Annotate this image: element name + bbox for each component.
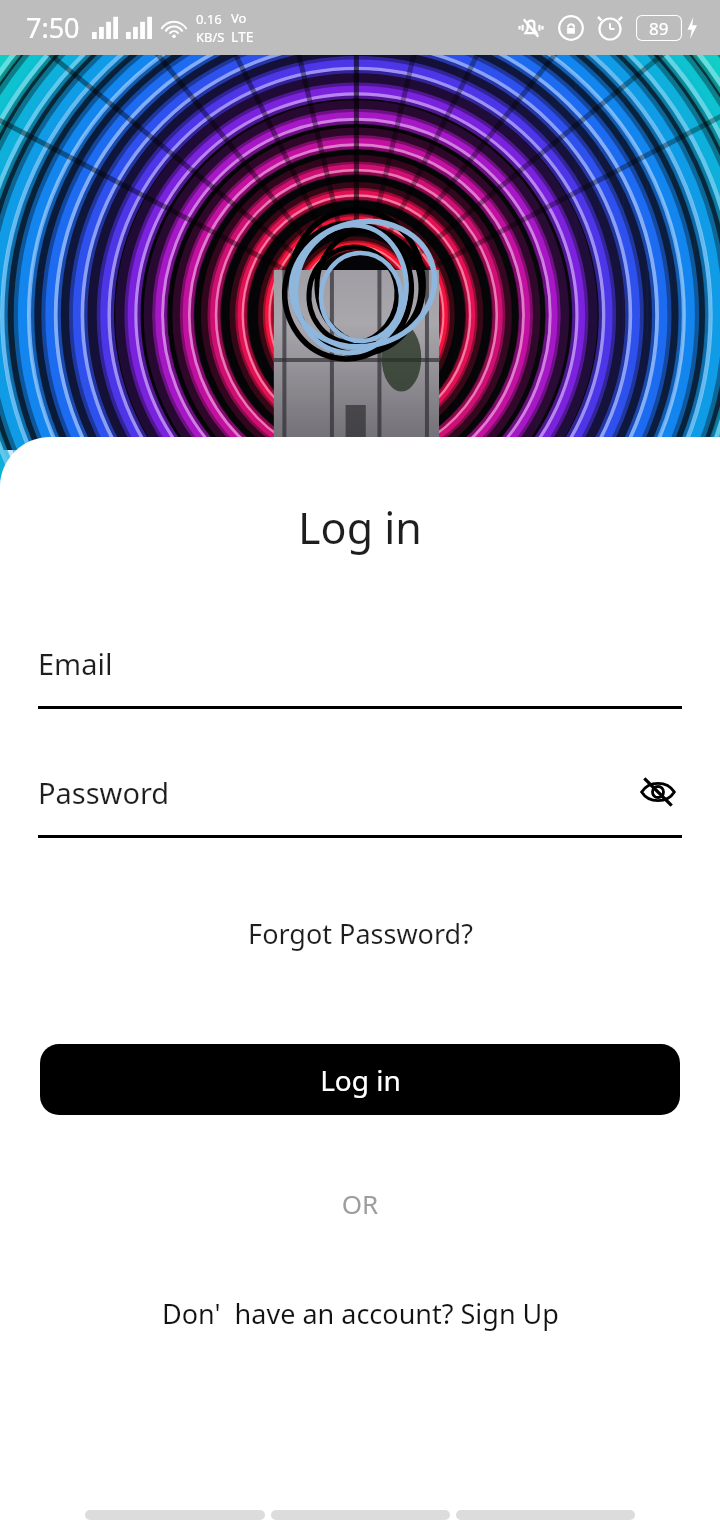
staticText: Log in <box>320 1061 401 1099</box>
button[interactable]: Forgot Password? <box>0 915 720 952</box>
button[interactable]: Log in <box>40 1044 680 1115</box>
staticText: Forgot Password? <box>248 915 473 952</box>
staticText: Password <box>38 773 170 812</box>
button[interactable]: Navigation <box>456 1510 635 1520</box>
staticText: Vo <box>231 9 247 27</box>
staticText: OR <box>0 1186 720 1221</box>
staticText: 0.16 <box>196 10 222 28</box>
staticText: KB/S <box>196 28 225 46</box>
button[interactable]: Navigation <box>271 1510 450 1520</box>
staticText: Email <box>38 644 113 683</box>
button[interactable]: Email <box>38 633 682 709</box>
button[interactable]: Password <box>38 762 682 838</box>
button[interactable]: Don' have an account? Sign Up <box>0 1295 720 1332</box>
staticText: 89 <box>649 17 669 40</box>
staticText: Don' have an account? Sign Up <box>162 1295 559 1332</box>
staticText: LTE <box>231 27 254 46</box>
button[interactable]: Navigation <box>85 1510 265 1520</box>
button[interactable]: Show password <box>634 768 682 816</box>
staticText: Log in <box>0 498 720 557</box>
staticText: 7:50 <box>26 9 80 46</box>
